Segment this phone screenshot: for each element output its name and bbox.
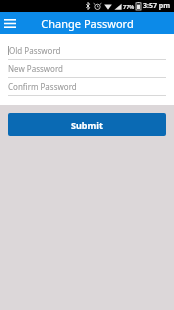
button[interactable]: Old Password bbox=[0, 42, 174, 60]
staticText: 77% bbox=[123, 3, 135, 10]
staticText: New Password bbox=[8, 63, 63, 74]
staticText: Old Password bbox=[9, 45, 61, 56]
button[interactable]: Confirm Password bbox=[0, 78, 174, 96]
button[interactable]: Open navigation menu bbox=[0, 13, 20, 33]
button[interactable]: New Password bbox=[0, 60, 174, 78]
staticText: 3:57 pm bbox=[143, 1, 171, 11]
staticText: Submit bbox=[71, 119, 103, 131]
button[interactable]: Submit bbox=[8, 113, 166, 136]
staticText: Change Password bbox=[41, 16, 134, 31]
staticText: Confirm Password bbox=[8, 81, 77, 92]
